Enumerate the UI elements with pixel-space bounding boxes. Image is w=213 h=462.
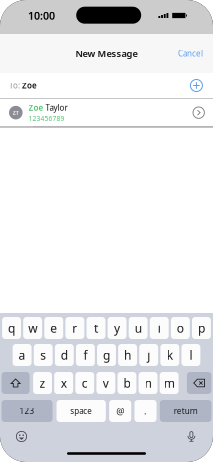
staticText: 10:00 xyxy=(28,8,55,23)
staticText: return xyxy=(174,406,198,416)
button[interactable]: r xyxy=(65,317,84,339)
button[interactable]: y xyxy=(108,317,126,339)
button[interactable]: j xyxy=(139,344,158,366)
staticText: q xyxy=(8,320,15,336)
button[interactable]: u xyxy=(129,317,148,339)
button[interactable]: n xyxy=(139,372,157,394)
staticText: 123456789 xyxy=(29,114,65,123)
staticText: p xyxy=(198,320,205,336)
button[interactable]: Dictate xyxy=(180,430,202,443)
staticText: t xyxy=(94,320,98,336)
button[interactable]: e xyxy=(44,317,63,339)
button[interactable]: Shift xyxy=(2,372,30,394)
staticText: i xyxy=(158,320,161,336)
button[interactable]: o xyxy=(171,317,190,339)
button[interactable]: i xyxy=(150,317,169,339)
staticText: w xyxy=(28,320,37,336)
staticText: v xyxy=(103,375,109,391)
button[interactable]: c xyxy=(75,372,94,394)
staticText: y xyxy=(114,320,120,336)
button[interactable]: Emoji xyxy=(10,430,32,443)
button[interactable]: @ xyxy=(109,400,131,422)
staticText: 123 xyxy=(20,406,35,416)
staticText: s xyxy=(40,347,46,363)
staticText: @ xyxy=(116,405,124,417)
staticText: . xyxy=(144,405,147,417)
staticText: b xyxy=(123,375,130,391)
staticText: c xyxy=(82,375,88,391)
staticText: k xyxy=(167,347,173,363)
staticText: e xyxy=(50,320,57,336)
staticText: g xyxy=(103,347,110,363)
button[interactable]: g xyxy=(97,344,116,366)
button[interactable]: space xyxy=(57,400,106,422)
staticText: Taylor xyxy=(44,102,68,113)
button[interactable]: p xyxy=(192,317,211,339)
button[interactable]: Add contact xyxy=(188,77,205,94)
button[interactable]: ZT xyxy=(0,99,213,126)
button[interactable]: x xyxy=(54,372,73,394)
staticText: n xyxy=(144,375,151,391)
button[interactable]: t xyxy=(86,317,105,339)
button[interactable]: f xyxy=(76,344,95,366)
staticText: a xyxy=(19,347,26,363)
staticText: j xyxy=(147,347,150,363)
staticText: x xyxy=(61,375,67,391)
button[interactable]: return xyxy=(160,400,211,422)
staticText: Cancel xyxy=(178,48,203,59)
button[interactable]: b xyxy=(117,372,136,394)
button[interactable]: z xyxy=(33,372,52,394)
button[interactable]: k xyxy=(160,344,179,366)
button[interactable]: d xyxy=(55,344,74,366)
button[interactable]: Cancel xyxy=(178,42,213,65)
staticText: New Message xyxy=(75,47,137,60)
button[interactable]: 123 xyxy=(2,400,53,422)
staticText: Zoe xyxy=(22,80,37,91)
button[interactable]: a xyxy=(13,344,31,366)
button[interactable]: h xyxy=(118,344,137,366)
button[interactable]: l xyxy=(181,344,200,366)
button[interactable]: Delete xyxy=(187,372,211,394)
button[interactable]: v xyxy=(96,372,115,394)
button[interactable]: . xyxy=(134,400,156,422)
staticText: ZT xyxy=(13,109,19,116)
staticText: Zoe xyxy=(29,102,44,113)
staticText: f xyxy=(83,347,87,363)
staticText: o xyxy=(177,320,184,336)
staticText: m xyxy=(164,375,175,391)
button[interactable]: m xyxy=(160,372,179,394)
staticText: u xyxy=(135,320,142,336)
staticText: space xyxy=(70,406,92,416)
staticText: l xyxy=(189,347,192,363)
staticText: d xyxy=(61,347,68,363)
staticText: r xyxy=(72,320,77,336)
button[interactable]: q xyxy=(2,317,21,339)
staticText: To: xyxy=(9,80,22,91)
staticText: z xyxy=(39,375,45,391)
staticText: h xyxy=(124,347,131,363)
button[interactable]: s xyxy=(34,344,53,366)
button[interactable]: w xyxy=(23,317,42,339)
